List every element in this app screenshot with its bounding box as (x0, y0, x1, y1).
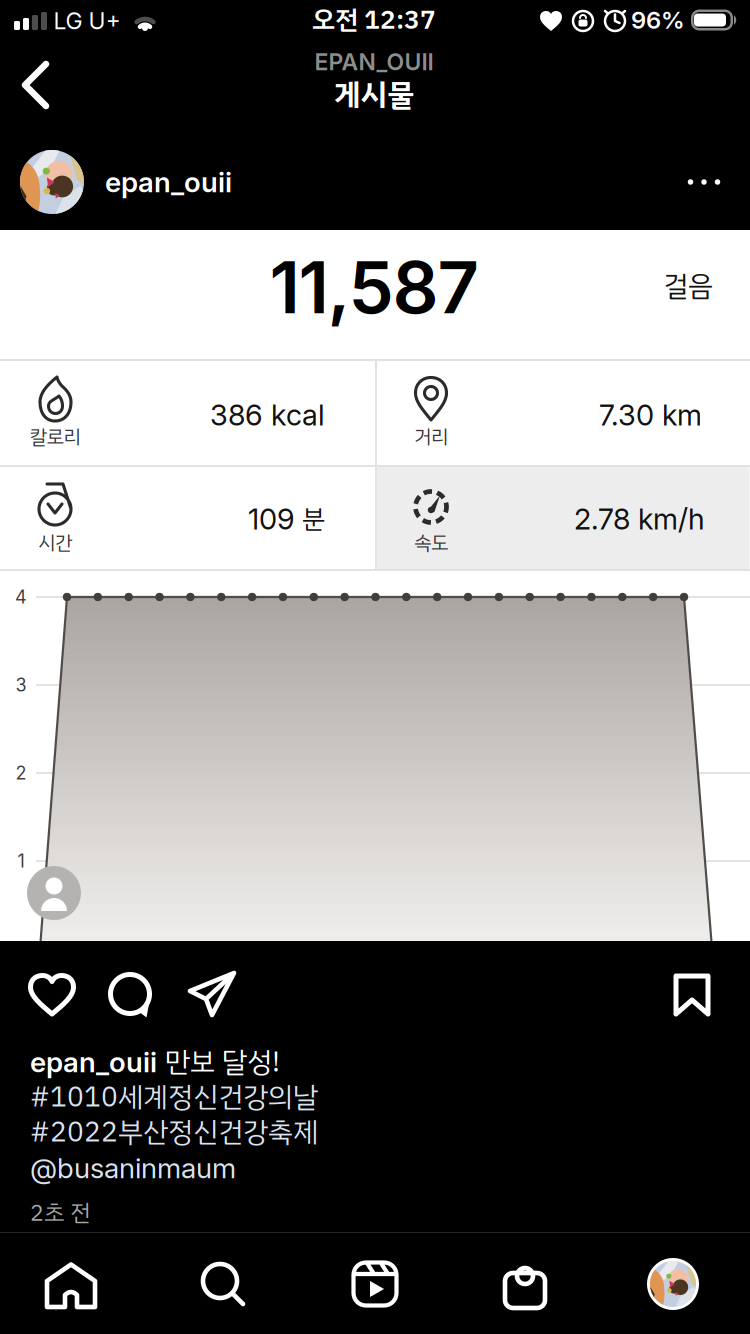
button[interactable]: Profile (647, 1258, 699, 1310)
staticText: #2022부산정신건강축제 (30, 1111, 318, 1153)
staticText: 2초 전 (30, 1196, 91, 1230)
staticText: 7.30 km (599, 397, 702, 433)
staticText: 오전 12:37 (312, 0, 436, 39)
staticText: 2 (15, 762, 26, 784)
button[interactable]: Search (200, 1261, 246, 1307)
staticText: 1 (17, 850, 24, 872)
button[interactable]: Home (44, 1262, 98, 1310)
staticText: 속도 (414, 528, 448, 558)
staticText: epan_ouii (105, 165, 232, 199)
staticText: #1010세계정신건강의날 (30, 1076, 318, 1118)
button[interactable]: epan_ouii profile (20, 150, 84, 214)
button[interactable]: Share (187, 970, 237, 1018)
button[interactable]: @busaninmaum (30, 1151, 720, 1185)
button[interactable]: Comment (108, 972, 154, 1018)
staticText: EPAN_OUII (314, 48, 433, 76)
button[interactable]: #2022부산정신건강축제 (30, 1111, 720, 1153)
staticText: epan_ouii (30, 1045, 157, 1079)
button[interactable]: Like (28, 973, 76, 1017)
button[interactable]: Back (19, 60, 53, 110)
staticText: 시간 (38, 528, 72, 558)
staticText: 2.78 km/h (574, 501, 705, 537)
button[interactable]: Save (673, 973, 711, 1017)
staticText: 109 (248, 501, 295, 537)
staticText: 3 (15, 674, 26, 696)
staticText: 게시물 (333, 72, 414, 117)
staticText: 만보 달성! (165, 1041, 280, 1083)
staticText: 거리 (414, 422, 448, 452)
staticText: LG U+ (53, 7, 120, 35)
button[interactable]: epan_ouii (105, 165, 725, 199)
staticText: 걸음 (663, 265, 713, 307)
staticText: 11,587 (269, 243, 478, 330)
button[interactable]: Shop (502, 1259, 548, 1311)
button[interactable]: More options (688, 179, 720, 185)
button[interactable]: Reels (351, 1260, 399, 1308)
button[interactable]: #1010세계정신건강의날 (30, 1076, 720, 1118)
staticText: 386 kcal (210, 397, 325, 433)
staticText: 분 (302, 499, 325, 538)
staticText: @busaninmaum (30, 1151, 236, 1185)
staticText: 칼로리 (29, 422, 80, 452)
staticText: 4 (15, 586, 27, 608)
staticText: 96% (631, 5, 685, 34)
